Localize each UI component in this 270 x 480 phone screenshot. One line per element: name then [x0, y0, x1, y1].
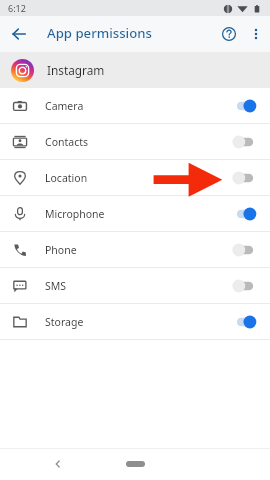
button[interactable]: Storage — [0, 304, 270, 339]
button[interactable]: Home — [126, 461, 145, 467]
button[interactable] — [235, 275, 261, 297]
button[interactable]: Instagram — [0, 52, 270, 88]
staticText: Microphone — [45, 207, 105, 221]
button[interactable] — [235, 95, 261, 117]
staticText: SMS — [45, 279, 67, 293]
staticText: Location — [45, 171, 88, 185]
staticText: Contacts — [45, 135, 89, 149]
staticText: Phone — [45, 243, 77, 257]
button[interactable] — [235, 239, 261, 261]
button[interactable] — [235, 167, 261, 189]
staticText: 6:12 — [8, 2, 26, 14]
button[interactable]: Microphone — [0, 196, 270, 231]
button[interactable]: Camera — [0, 88, 270, 123]
button[interactable]: Location — [0, 160, 270, 195]
button[interactable]: Navigate up — [7, 22, 31, 46]
button[interactable]: Back — [46, 452, 70, 476]
staticText: Storage — [45, 315, 84, 329]
staticText: App permissions — [47, 24, 152, 42]
button[interactable] — [235, 203, 261, 225]
button[interactable] — [235, 131, 261, 153]
staticText: Camera — [45, 99, 84, 113]
button[interactable]: SMS — [0, 268, 270, 303]
staticText: Instagram — [47, 62, 105, 78]
button[interactable]: Contacts — [0, 124, 270, 159]
button[interactable] — [235, 311, 261, 333]
button[interactable]: Phone — [0, 232, 270, 267]
button[interactable]: More options — [244, 22, 268, 46]
button[interactable]: Help — [217, 22, 241, 46]
